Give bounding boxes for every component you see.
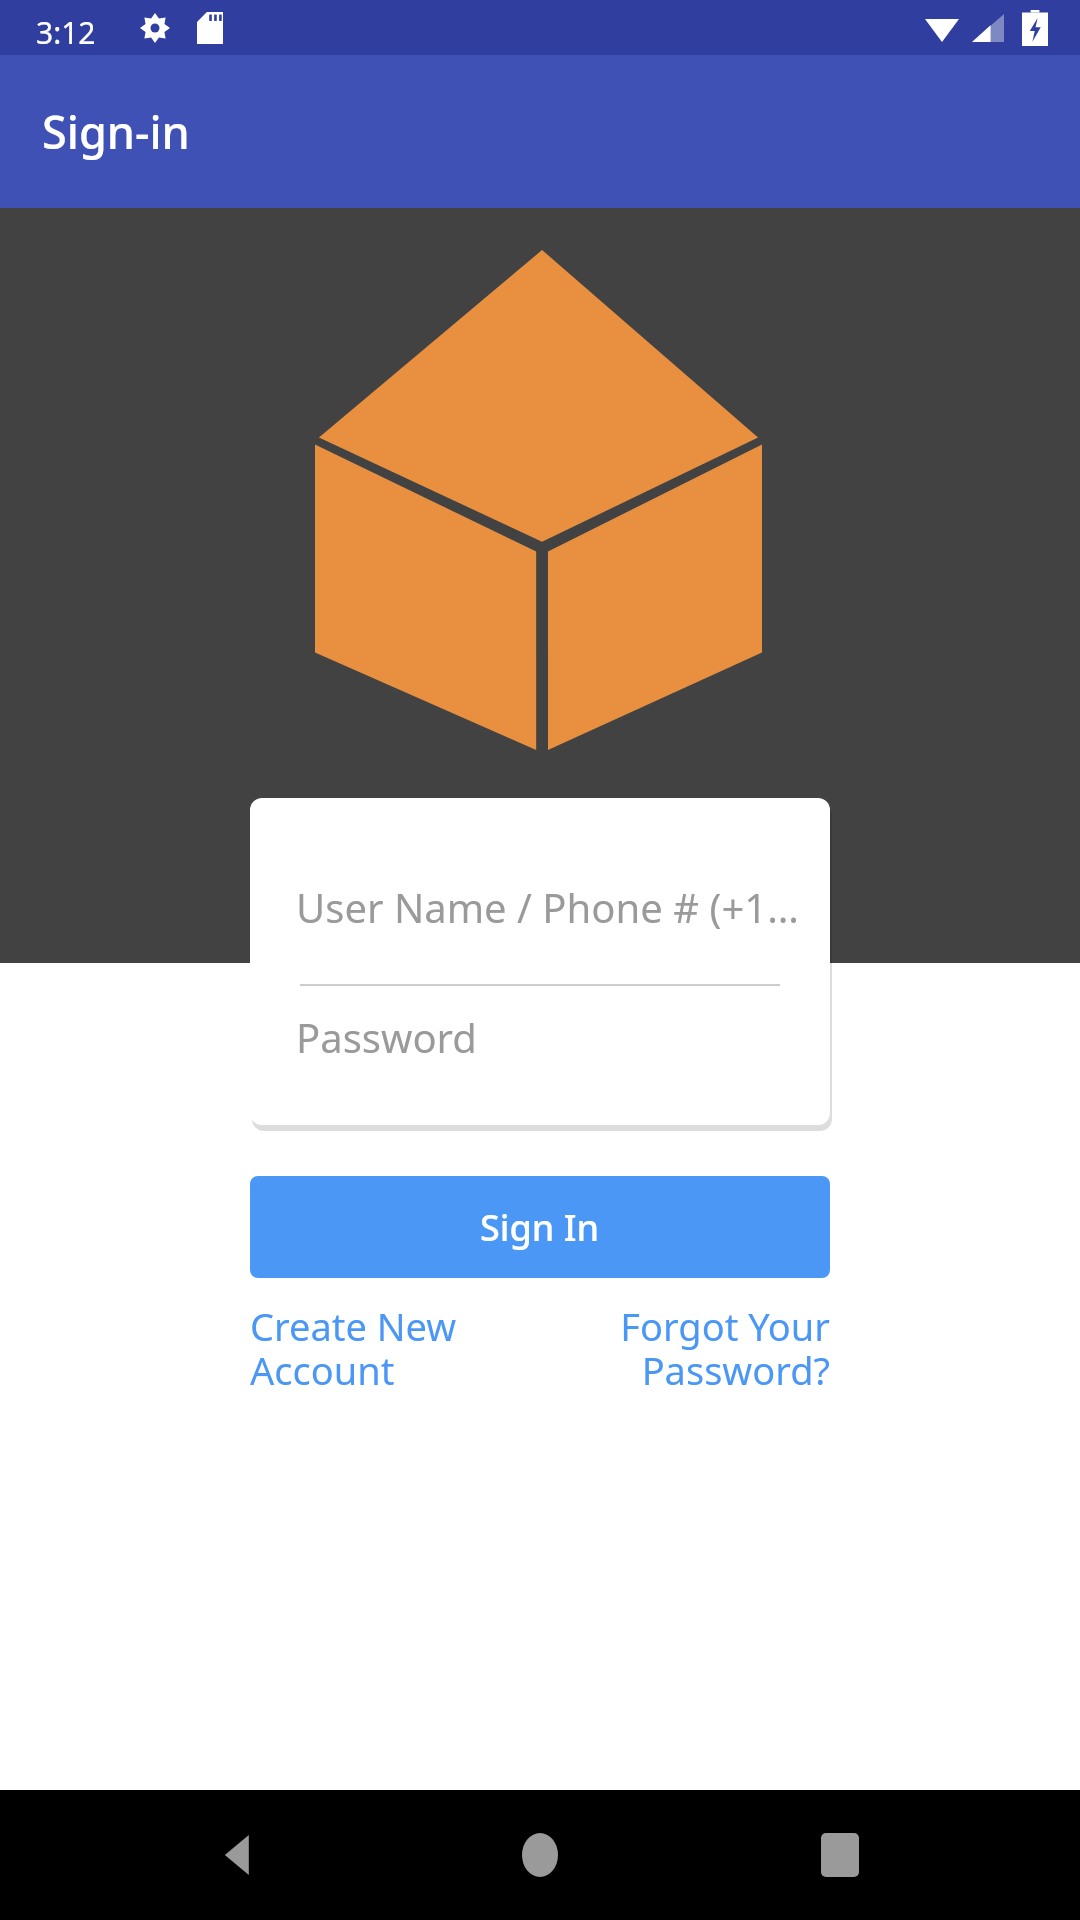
button[interactable]: Create New Account <box>250 1300 500 1396</box>
button[interactable]: Back <box>175 1790 305 1920</box>
staticText: Create New Account <box>250 1300 500 1396</box>
button[interactable]: Home <box>475 1790 605 1920</box>
staticText: User Name / Phone # (+1… <box>296 880 799 934</box>
button[interactable]: Recent apps <box>775 1790 905 1920</box>
button[interactable]: Password <box>250 986 830 1125</box>
staticText: Password <box>296 1010 477 1064</box>
button[interactable]: User Name / Phone # (+1… <box>250 798 830 984</box>
staticText: 3:12 <box>36 12 96 53</box>
staticText: Sign In <box>480 1203 600 1252</box>
button[interactable]: Sign In <box>250 1176 830 1278</box>
staticText: Forgot Your Password? <box>580 1300 830 1396</box>
staticText: Sign-in <box>42 101 190 162</box>
button[interactable]: Forgot Your Password? <box>580 1300 830 1396</box>
